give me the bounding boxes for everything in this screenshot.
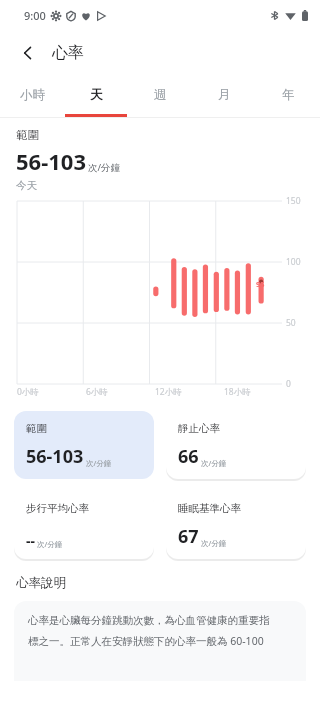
staticText: 步行平均心率 (26, 502, 89, 515)
staticText: 50 (286, 317, 296, 329)
staticText: 9:00 (24, 8, 46, 23)
button[interactable]: 年 (256, 76, 320, 114)
button[interactable]: 步行平均心率 (14, 491, 154, 559)
button[interactable]: 心率是心臟每分鐘跳動次數，為心血管健康的重要指 (14, 601, 306, 681)
staticText: 66 (178, 444, 199, 469)
staticText: 月 (218, 87, 231, 103)
staticText: -- (26, 531, 35, 550)
staticText: 150 (286, 195, 301, 207)
button[interactable]: 睡眠基準心率 (166, 491, 306, 559)
staticText: 年 (282, 87, 295, 103)
staticText: 範圍 (16, 128, 39, 142)
button[interactable]: 小時 (0, 76, 64, 114)
staticText: 次/分鐘 (88, 161, 121, 174)
staticText: 次/分鐘 (86, 458, 112, 468)
button[interactable]: 靜止心率 (166, 411, 306, 479)
staticText: 天 (90, 87, 103, 103)
staticText: 6小時 (86, 386, 108, 398)
button[interactable]: 週 (128, 76, 192, 114)
staticText: 67 (178, 524, 199, 549)
staticText: 次/分鐘 (201, 538, 227, 548)
staticText: 0小時 (17, 386, 39, 398)
staticText: 56-103 (16, 146, 86, 176)
staticText: 次/分鐘 (37, 539, 63, 549)
staticText: 範圍 (26, 422, 47, 435)
staticText: 18小時 (224, 386, 251, 398)
staticText: 小時 (20, 87, 45, 103)
staticText: 睡眠基準心率 (178, 502, 241, 515)
staticText: 次/分鐘 (201, 458, 227, 468)
staticText: 心率 (52, 43, 84, 63)
staticText: 標之一。正常人在安靜狀態下的心率一般為 60-100 (28, 634, 264, 648)
staticText: 12小時 (155, 386, 182, 398)
staticText: 靜止心率 (178, 422, 220, 435)
staticText: 今天 (16, 179, 37, 192)
button[interactable]: 範圍 (14, 411, 154, 479)
staticText: 100 (286, 256, 301, 268)
staticText: 心率是心臟每分鐘跳動次數，為心血管健康的重要指 (28, 614, 270, 627)
button[interactable]: 天 (64, 76, 128, 114)
staticText: 95 (256, 279, 265, 289)
button[interactable]: 月 (192, 76, 256, 114)
staticText: 0 (286, 378, 291, 390)
staticText: 週 (154, 87, 167, 103)
staticText: 56-103 (26, 444, 84, 469)
button[interactable]: 返回 (12, 37, 44, 69)
staticText: 心率說明 (16, 575, 66, 591)
